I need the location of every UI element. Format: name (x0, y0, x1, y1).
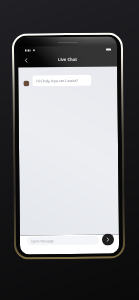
button[interactable]: Back (21, 55, 30, 64)
staticText: Live Chat (58, 57, 77, 63)
button[interactable]: Type message (27, 236, 99, 245)
staticText: Type message (31, 238, 54, 243)
staticText: Hi Cindy, how can I assist? (36, 78, 78, 83)
button[interactable]: Send (102, 233, 114, 246)
